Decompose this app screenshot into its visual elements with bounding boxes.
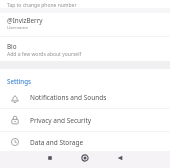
staticText: Bio — [7, 42, 17, 51]
button[interactable]: Back — [112, 150, 128, 166]
staticText: Notifications and Sounds — [30, 93, 107, 102]
button[interactable]: Home — [77, 150, 93, 166]
staticText: @InvizBerry — [7, 16, 43, 25]
staticText: Data and Storage — [30, 138, 84, 147]
button[interactable]: @InvizBerry — [0, 13, 170, 36]
button[interactable]: Privacy and Security — [0, 109, 170, 131]
staticText: Tap to change phone number — [7, 2, 77, 9]
button[interactable]: Data and Storage — [0, 131, 170, 153]
staticText: Privacy and Security — [30, 116, 92, 125]
button[interactable]: Tap to change phone number — [0, 0, 170, 9]
button[interactable]: Recent apps — [42, 150, 58, 166]
staticText: Settings — [7, 77, 32, 85]
staticText: Add a few words about yourself — [7, 51, 82, 58]
button[interactable]: Notifications and Sounds — [0, 86, 170, 108]
button[interactable]: Bio — [0, 37, 170, 61]
staticText: Username — [7, 24, 28, 30]
